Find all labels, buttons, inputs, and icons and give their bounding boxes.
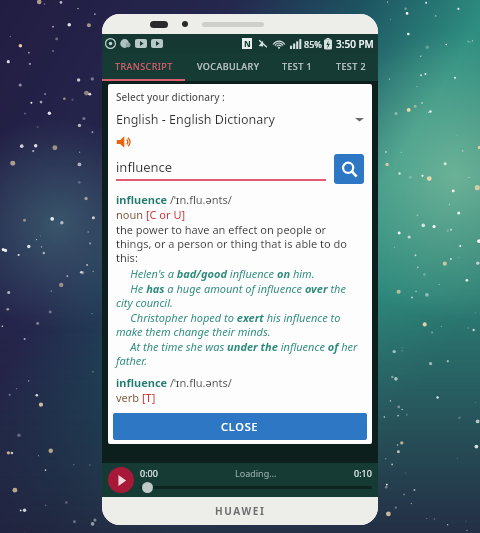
- staticText: Jenny: Hi Marco, did you see that progra…: [110, 106, 370, 134]
- other: Open dictionary list: [355, 115, 364, 124]
- staticText: Select your dictionary :: [116, 90, 225, 104]
- staticText: N: [244, 38, 251, 49]
- staticText: Helen's a bad/good influence on him.: [116, 266, 315, 281]
- staticText: influence: [116, 158, 173, 176]
- staticText: 3:50 PM: [336, 37, 374, 51]
- staticText: influence /ˈɪn.flu.ənts/: [116, 192, 232, 207]
- staticText: TRANSCRIPT: [115, 60, 173, 72]
- staticText: the power to have an effect on people or…: [116, 222, 364, 265]
- staticText: influence /ˈɪn.flu.ənts/: [116, 375, 232, 390]
- staticText: English - English Dictionary: [116, 111, 355, 128]
- staticText: I think it was on channel 4. It was real…: [110, 138, 370, 208]
- staticText: CLOSE: [221, 419, 259, 434]
- button[interactable]: English - English Dictionary: [116, 111, 364, 128]
- button[interactable]: Pronounce word: [116, 133, 134, 151]
- button[interactable]: Play: [108, 467, 134, 493]
- button[interactable]: Seek: [142, 482, 153, 493]
- staticText: verb [T]: [116, 390, 156, 405]
- staticText: At the time she was under the influence …: [116, 339, 364, 368]
- button[interactable]: TEST 1: [270, 53, 324, 79]
- staticText: 0:10: [354, 467, 372, 479]
- staticText: 0:00: [140, 467, 158, 479]
- staticText: He has a huge amount of influence over t…: [116, 281, 364, 310]
- staticText: TEST 2: [336, 60, 366, 72]
- staticText: noun [C or U]: [116, 207, 186, 222]
- button[interactable]: TEST 2: [324, 53, 378, 79]
- staticText: HUAWEI: [215, 504, 266, 518]
- button[interactable]: VOCABULARY: [186, 53, 270, 79]
- button[interactable]: TRANSCRIPT: [102, 53, 186, 79]
- staticText: Christopher hoped to exert his influence…: [116, 310, 364, 339]
- staticText: 85%: [304, 38, 322, 50]
- staticText: Loading...: [235, 467, 277, 479]
- staticText: 24 Is TV a good or bad influence?: [110, 85, 370, 100]
- button[interactable]: Search: [334, 154, 364, 184]
- staticText: TEST 1: [282, 60, 312, 72]
- button[interactable]: CLOSE: [113, 413, 367, 440]
- staticText: VOCABULARY: [197, 60, 260, 72]
